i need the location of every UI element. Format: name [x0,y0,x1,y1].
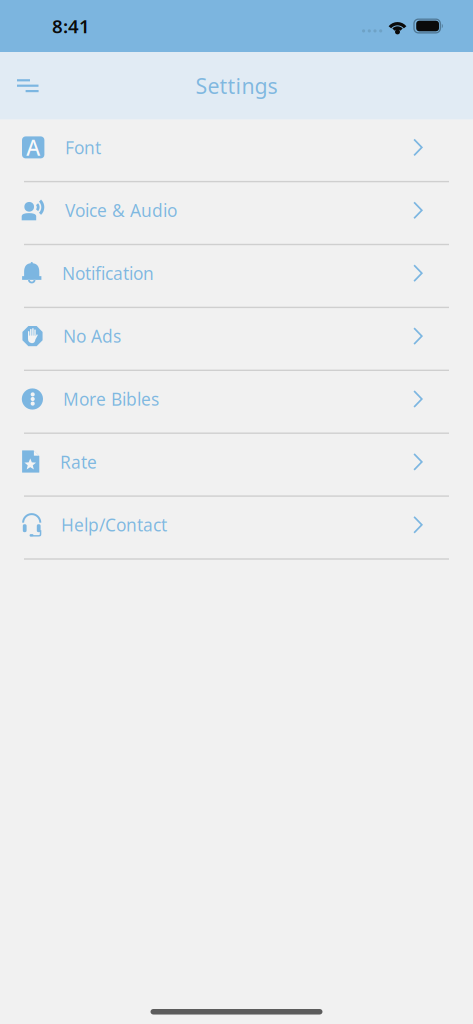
staticText: Settings [195,71,277,100]
staticText: 8:41 [52,14,90,38]
staticText: A [26,133,40,161]
staticText: Help/Contact [61,513,167,536]
staticText: Font [65,136,101,159]
staticText: No Ads [63,325,121,348]
staticText: Voice & Audio [65,199,177,222]
button[interactable]: Notification [0,245,473,308]
button[interactable]: Voice & Audio [0,182,473,245]
button[interactable]: Menu [6,64,50,108]
button[interactable]: No Ads [0,308,473,371]
staticText: Notification [62,262,154,285]
button[interactable]: A [0,119,473,182]
staticText: More Bibles [63,387,159,410]
staticText: Rate [60,450,97,473]
button[interactable]: More Bibles [0,371,473,434]
button[interactable]: Rate [0,434,473,497]
button[interactable]: Help/Contact [0,497,473,560]
